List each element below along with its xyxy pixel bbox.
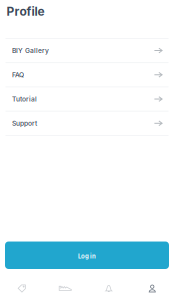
button[interactable]: Notifications [87,274,130,300]
button[interactable]: Profile [130,274,174,300]
button[interactable]: Tutorial [0,87,174,111]
button[interactable]: FAQ [0,63,174,86]
button[interactable]: Shop [0,274,43,300]
button[interactable]: BIY Gallery [0,39,174,62]
button[interactable]: Support [0,111,174,135]
staticText: FAQ [12,71,24,79]
staticText: BIY Gallery [12,46,49,55]
button[interactable]: Sneakers [43,274,87,300]
staticText: Tutorial [12,95,37,103]
staticText: Log in [78,253,96,260]
staticText: Support [12,119,37,127]
button[interactable]: Log in [5,241,169,269]
staticText: Profile [6,4,44,18]
